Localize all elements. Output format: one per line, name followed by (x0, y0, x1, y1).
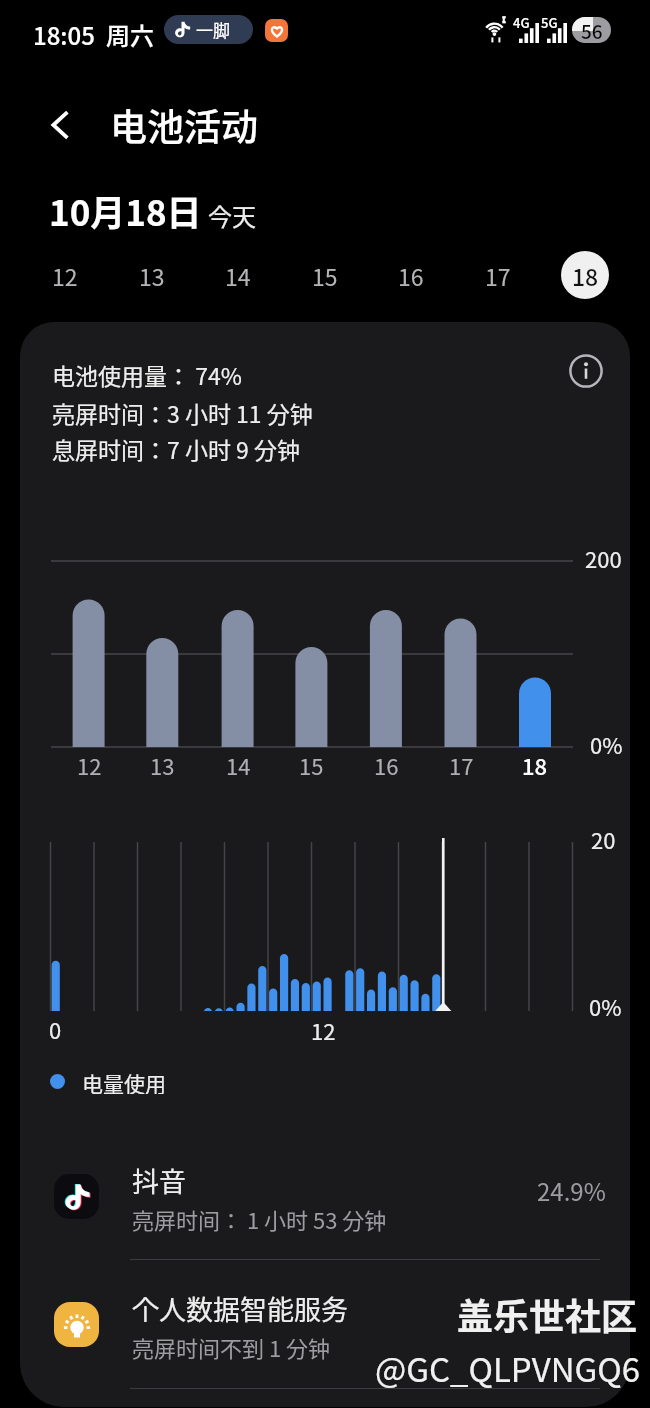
staticText: 17 (449, 749, 474, 781)
staticText: 4G (513, 13, 530, 32)
staticText: 亮屏时间： 1 小时 53 分钟 (132, 1203, 387, 1235)
staticText: 0% (590, 728, 623, 760)
staticText: 盖乐世社区 (457, 1288, 638, 1340)
staticText: 0% (589, 990, 622, 1022)
staticText: 电量使用 (82, 1068, 166, 1094)
staticText: 12 (77, 749, 102, 781)
staticText: 电池使用量： 74% (52, 358, 242, 391)
staticText: 200 (585, 542, 622, 574)
staticText: 18 (572, 259, 599, 292)
staticText: 10月18日 (49, 185, 202, 236)
staticText: 今天 (208, 198, 256, 233)
staticText: 15 (299, 749, 324, 781)
button[interactable]: 17 (474, 251, 522, 299)
staticText: 抖音 (132, 1161, 186, 1200)
staticText: 16 (374, 749, 399, 781)
staticText: 18 (522, 749, 548, 781)
staticText: 12 (311, 1014, 336, 1046)
staticText: 12 (52, 259, 78, 292)
button[interactable]: 18 (561, 251, 609, 299)
button[interactable]: 一脚 (164, 15, 253, 44)
staticText: @GC_QLPVNGQ6 (375, 1344, 641, 1392)
staticText: 息屏时间：7 小时 9 分钟 (52, 432, 300, 465)
staticText: 16 (398, 259, 424, 292)
staticText: 5G (541, 13, 558, 32)
staticText: 一脚 (196, 17, 230, 42)
staticText: 18:05 (33, 17, 95, 52)
button[interactable]: Back (38, 102, 84, 148)
staticText: 周六 (106, 17, 154, 52)
staticText: 14 (225, 259, 251, 292)
staticText: 14 (226, 749, 251, 781)
button[interactable]: App notification (265, 19, 288, 42)
button[interactable]: 16 (387, 251, 435, 299)
button[interactable]: 12 (41, 251, 89, 299)
staticText: 20 (591, 823, 616, 855)
staticText: 亮屏时间：3 小时 11 分钟 (52, 396, 313, 429)
staticText: 个人数据智能服务 (132, 1289, 348, 1328)
staticText: 亮屏时间不到 1 分钟 (132, 1331, 331, 1363)
button[interactable]: 13 (128, 251, 176, 299)
button[interactable]: 15 (301, 251, 349, 299)
staticText: 电池活动 (110, 98, 258, 152)
button[interactable]: 个人数据智能服务 (20, 1265, 630, 1383)
staticText: 24.9% (537, 1173, 606, 1208)
button[interactable]: 14 (214, 251, 262, 299)
staticText: 13 (150, 749, 175, 781)
staticText: 13 (139, 259, 165, 292)
staticText: 17 (485, 259, 511, 292)
button[interactable]: 抖音 (20, 1137, 630, 1255)
staticText: 15 (312, 259, 338, 292)
staticText: 0 (49, 1013, 62, 1045)
staticText: 56 (581, 17, 603, 43)
button[interactable]: Info (564, 349, 608, 393)
